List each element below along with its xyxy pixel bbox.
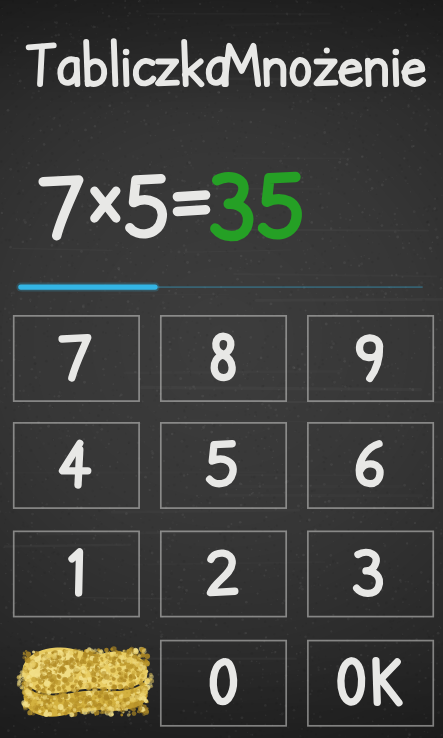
- button[interactable]: Digit 0: [161, 641, 286, 726]
- button[interactable]: OK: [308, 641, 433, 726]
- button[interactable]: Digit 3: [308, 531, 433, 616]
- button[interactable]: Digit 5: [161, 423, 286, 508]
- button[interactable]: Digit 8: [161, 316, 286, 401]
- button[interactable]: Digit 9: [308, 316, 433, 401]
- button[interactable]: Digit 4: [14, 423, 139, 508]
- button[interactable]: Digit 7: [14, 316, 139, 401]
- button[interactable]: Digit 6: [308, 423, 433, 508]
- button[interactable]: Digit 2: [161, 531, 286, 616]
- button[interactable]: Digit 1: [14, 531, 139, 616]
- button[interactable]: Erase: [16, 636, 153, 733]
